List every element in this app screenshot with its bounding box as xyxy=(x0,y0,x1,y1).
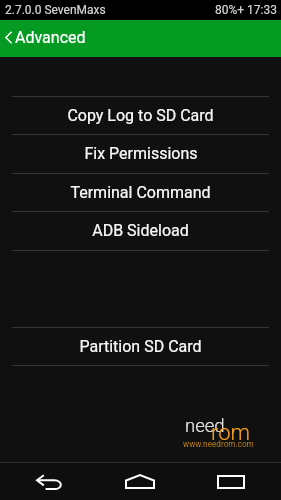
button[interactable]: Recents xyxy=(187,463,281,500)
staticText: ADB Sideload xyxy=(92,221,189,240)
button[interactable]: Partition SD Card xyxy=(0,328,281,365)
staticText: need xyxy=(185,415,225,437)
button[interactable]: Back xyxy=(0,463,93,500)
button[interactable]: Terminal Command xyxy=(0,174,281,211)
staticText: Partition SD Card xyxy=(79,337,202,356)
button[interactable]: Copy Log to SD Card xyxy=(0,97,281,134)
staticText: www.needrom.com xyxy=(183,439,254,449)
staticText: 2.7.0.0 SevenMaxs xyxy=(5,3,106,17)
staticText: 80%+ 17:33 xyxy=(215,3,277,17)
staticText: Copy Log to SD Card xyxy=(67,106,214,125)
button[interactable]: ADB Sideload xyxy=(0,212,281,249)
staticText: Advanced xyxy=(15,28,86,47)
button[interactable]: Fix Permissions xyxy=(0,135,281,172)
staticText: Fix Permissions xyxy=(84,144,198,163)
button[interactable]: Advanced xyxy=(0,20,94,57)
staticText: rom xyxy=(211,420,251,446)
button[interactable]: Home xyxy=(93,463,187,500)
staticText: Terminal Command xyxy=(70,183,211,202)
